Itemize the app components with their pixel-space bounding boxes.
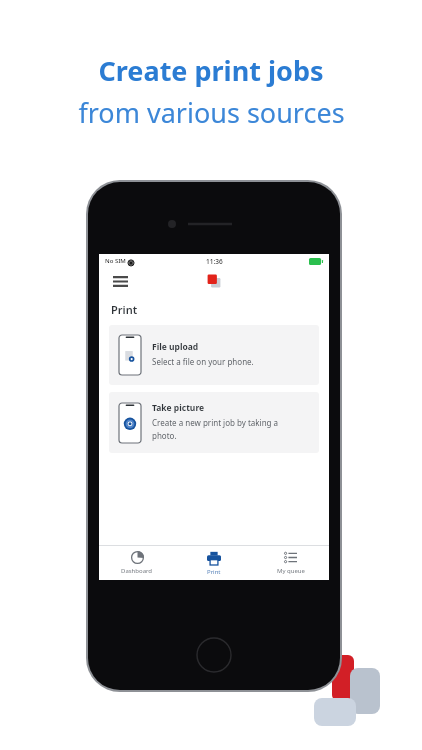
staticText: Select a file on your phone. [152,356,254,367]
staticText: Print [111,302,138,317]
staticText: Take picture [152,402,205,414]
staticText: File upload [152,341,199,353]
staticText: No SIM [105,257,126,265]
button[interactable]: Take picture [109,392,319,453]
staticText: from various sources [78,94,345,131]
staticText: photo. [152,430,177,441]
staticText: Create a new print job by taking a [152,417,279,428]
staticText: Print [207,568,221,576]
staticText: Create print jobs [98,52,324,89]
button[interactable]: Print [175,546,252,580]
staticText: Dashboard [121,567,153,575]
staticText: 11:36 [206,257,223,266]
button[interactable]: Menu [110,271,130,291]
button[interactable]: Dashboard [99,546,175,580]
staticText: My queue [277,567,305,575]
button[interactable]: My queue [252,546,329,580]
button[interactable]: File upload [109,325,319,385]
